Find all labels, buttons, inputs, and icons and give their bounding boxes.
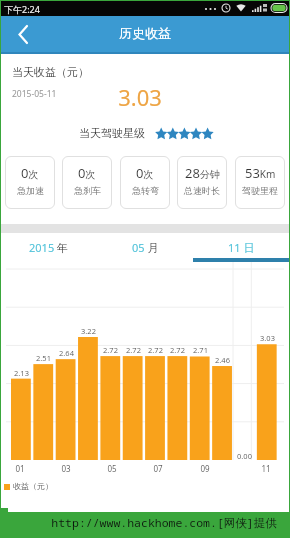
staticText: 28分钟	[185, 164, 220, 182]
staticText: 03	[61, 463, 71, 474]
button[interactable]: 11 日	[193, 233, 290, 262]
button[interactable]: 0次	[120, 156, 170, 209]
button[interactable]	[0, 16, 44, 53]
staticText: 2.72	[148, 345, 163, 355]
staticText: 2.64	[59, 348, 74, 358]
staticText: 0.00	[237, 451, 252, 461]
staticText: 2.71	[193, 345, 208, 355]
staticText: 2015 年	[29, 240, 69, 255]
staticText: 驾驶里程	[242, 185, 278, 196]
staticText: 3.03	[260, 333, 275, 343]
staticText: 2.72	[170, 345, 185, 355]
staticText: 11 日	[228, 240, 255, 255]
staticText: 05 月	[132, 240, 159, 255]
staticText: 急转弯	[132, 185, 159, 196]
staticText: 2.72	[126, 345, 141, 355]
staticText: 01	[15, 463, 25, 474]
staticText: 2015-05-11	[12, 88, 57, 100]
staticText: 急刹车	[74, 185, 101, 196]
staticText: 3.03	[118, 82, 162, 112]
staticText: 总速时长	[184, 185, 220, 196]
button[interactable]: 28分钟	[177, 156, 227, 209]
staticText: 3.22	[81, 326, 96, 336]
staticText: 当天驾驶星级	[79, 126, 145, 140]
staticText: 0次	[21, 164, 39, 182]
staticText: 0次	[78, 164, 96, 182]
button[interactable]: 2015 年	[0, 233, 97, 262]
staticText: 2.51	[36, 353, 51, 363]
staticText: 0次	[136, 164, 154, 182]
staticText: 当天收益（元）	[12, 65, 89, 79]
staticText: 下午2:24	[4, 3, 40, 15]
button[interactable]: 0次	[62, 156, 112, 209]
staticText: 收益（元）	[13, 481, 53, 491]
staticText: 11	[261, 463, 271, 474]
staticText: 2.46	[215, 355, 230, 365]
staticText: 2.13	[14, 368, 29, 378]
button[interactable]: 05 月	[97, 233, 194, 262]
staticText: 07	[153, 463, 163, 474]
staticText: 历史收益	[119, 25, 171, 41]
staticText: 05	[107, 463, 117, 474]
staticText: http://www.hackhome.com.[网侠]提供	[51, 515, 277, 531]
staticText: 09	[200, 463, 210, 474]
staticText: 2.72	[103, 345, 118, 355]
button[interactable]: 0次	[5, 156, 55, 209]
button[interactable]: 53Km	[235, 156, 285, 209]
staticText: 急加速	[17, 185, 44, 196]
staticText: 53Km	[245, 164, 276, 182]
